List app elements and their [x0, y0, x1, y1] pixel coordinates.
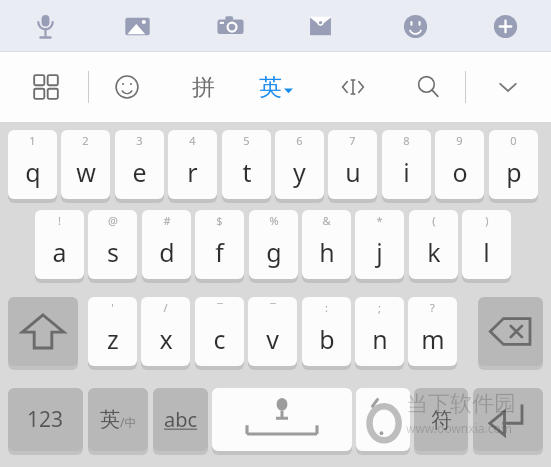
staticText: r	[187, 155, 198, 189]
button[interactable]: /	[141, 297, 190, 368]
staticText: 5	[243, 133, 250, 148]
staticText: b	[319, 322, 335, 356]
staticText: q	[25, 155, 41, 189]
staticText: 1	[29, 133, 36, 148]
staticText: w	[76, 155, 96, 189]
staticText: 当下软件园	[406, 390, 516, 418]
button[interactable]: Cursor control	[329, 63, 377, 111]
button[interactable]: Enter	[473, 388, 543, 453]
staticText: 英	[259, 73, 282, 102]
button[interactable]: 5	[222, 130, 271, 201]
staticText: 拼	[192, 73, 215, 102]
button[interactable]: #	[142, 210, 191, 281]
staticText: j	[376, 235, 383, 269]
staticText: z	[107, 322, 119, 356]
staticText: 3	[136, 133, 143, 148]
button[interactable]: ¯	[248, 297, 297, 368]
button[interactable]: )	[462, 210, 511, 281]
button[interactable]: Keyboard layouts	[22, 63, 70, 111]
button[interactable]: ?	[408, 297, 457, 368]
button[interactable]: ;	[355, 297, 404, 368]
staticText: 0	[510, 133, 517, 148]
staticText: d	[159, 235, 175, 269]
staticText: /	[163, 300, 168, 315]
button[interactable]: 6	[275, 130, 324, 201]
button[interactable]: 符	[414, 388, 468, 453]
button[interactable]: :	[302, 297, 351, 368]
staticText: e	[132, 155, 147, 189]
staticText: ;	[378, 300, 381, 315]
button[interactable]: Backspace	[478, 297, 543, 368]
staticText: &	[322, 213, 331, 228]
button[interactable]: Gallery	[114, 3, 160, 49]
button[interactable]: &	[302, 210, 351, 281]
staticText: 英	[100, 407, 120, 432]
button[interactable]: 1	[8, 130, 57, 201]
button[interactable]: 9	[435, 130, 484, 201]
button[interactable]: @	[88, 210, 137, 281]
staticText: www.downxia.com	[406, 420, 512, 436]
staticText: 7	[349, 133, 356, 148]
staticText: ?	[430, 300, 435, 315]
button[interactable]: 123	[8, 388, 83, 453]
staticText: !	[58, 213, 61, 228]
button[interactable]: $	[195, 210, 244, 281]
button[interactable]: 3	[115, 130, 164, 201]
button[interactable]: Camera	[207, 3, 253, 49]
button[interactable]: Emoji panel	[103, 63, 151, 111]
staticText: 6	[296, 133, 303, 148]
staticText: k	[427, 235, 441, 269]
staticText: 8	[403, 133, 410, 148]
button[interactable]: Shift	[8, 297, 78, 368]
button[interactable]: Search	[404, 63, 452, 111]
staticText: s	[107, 235, 119, 269]
button[interactable]: *	[355, 210, 404, 281]
staticText: 符	[431, 407, 452, 433]
button[interactable]: Hide keyboard	[484, 63, 532, 111]
button[interactable]: !	[35, 210, 84, 281]
staticText: 4	[189, 133, 196, 148]
staticText: %	[269, 213, 279, 228]
button[interactable]: 0	[489, 130, 538, 201]
staticText: h	[319, 235, 335, 269]
staticText: y	[293, 155, 306, 189]
staticText: c	[213, 322, 226, 356]
staticText: '	[111, 300, 114, 315]
button[interactable]: 英	[88, 388, 148, 453]
button[interactable]: 8	[382, 130, 431, 201]
staticText: x	[159, 322, 173, 356]
button[interactable]: Message	[297, 3, 343, 49]
button[interactable]: 4	[168, 130, 217, 201]
staticText: m	[421, 322, 445, 356]
button[interactable]: 2	[61, 130, 110, 201]
staticText: 123	[27, 405, 64, 434]
button[interactable]: (	[409, 210, 458, 281]
button[interactable]: Space	[212, 388, 352, 453]
staticText: g	[266, 235, 282, 269]
staticText: o	[452, 155, 468, 189]
button[interactable]: 拼	[179, 63, 227, 111]
staticText: ¯	[217, 300, 223, 315]
staticText: a	[52, 235, 67, 269]
button[interactable]: '	[88, 297, 137, 368]
staticText: 9	[456, 133, 463, 148]
button[interactable]: abc	[153, 388, 208, 453]
button[interactable]: ¯	[195, 297, 244, 368]
staticText: )	[485, 213, 489, 228]
staticText: i	[403, 155, 410, 189]
staticText: 2	[82, 133, 89, 148]
staticText: p	[506, 155, 522, 189]
staticText: n	[372, 322, 388, 356]
staticText: ¯	[270, 300, 276, 315]
button[interactable]: Handwriting	[356, 388, 410, 453]
button[interactable]: More	[482, 3, 528, 49]
staticText: @	[108, 213, 118, 228]
button[interactable]: Emoji	[392, 3, 438, 49]
button[interactable]: 7	[328, 130, 377, 201]
staticText: $	[216, 213, 223, 228]
button[interactable]: 英	[247, 63, 305, 111]
button[interactable]: Voice input	[22, 3, 68, 49]
button[interactable]: %	[249, 210, 298, 281]
staticText: l	[483, 235, 490, 269]
staticText: /中	[120, 414, 137, 430]
